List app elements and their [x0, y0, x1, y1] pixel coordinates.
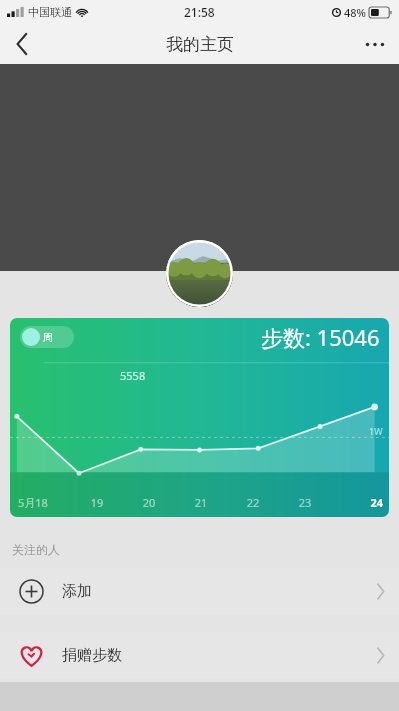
staticText: 19: [71, 495, 123, 510]
staticText: 21:58: [184, 4, 215, 20]
staticText: 添加: [62, 582, 92, 601]
button[interactable]: 添加: [0, 568, 399, 615]
staticText: 周: [43, 331, 53, 344]
staticText: 步数: 15046: [261, 322, 380, 352]
button[interactable]: 周: [10, 318, 389, 517]
button[interactable]: More options: [351, 24, 399, 64]
button[interactable]: 捐赠步数: [0, 632, 399, 679]
staticText: 捐赠步数: [62, 646, 122, 665]
staticText: 22: [227, 495, 279, 510]
staticText: 5558: [120, 368, 146, 383]
staticText: 20: [123, 495, 175, 510]
staticText: 1W: [369, 425, 383, 437]
button[interactable]: Back: [0, 24, 44, 64]
staticText: 23: [279, 495, 331, 510]
button[interactable]: Profile photo: [166, 240, 233, 307]
staticText: 中国联通: [28, 5, 72, 19]
staticText: 关注的人: [12, 542, 60, 557]
staticText: 我的主页: [166, 34, 234, 55]
button[interactable]: 周: [20, 326, 74, 348]
staticText: 5月18: [18, 495, 71, 510]
staticText: 21: [175, 495, 227, 510]
staticText: 48%: [344, 5, 366, 20]
staticText: 24: [331, 495, 383, 510]
